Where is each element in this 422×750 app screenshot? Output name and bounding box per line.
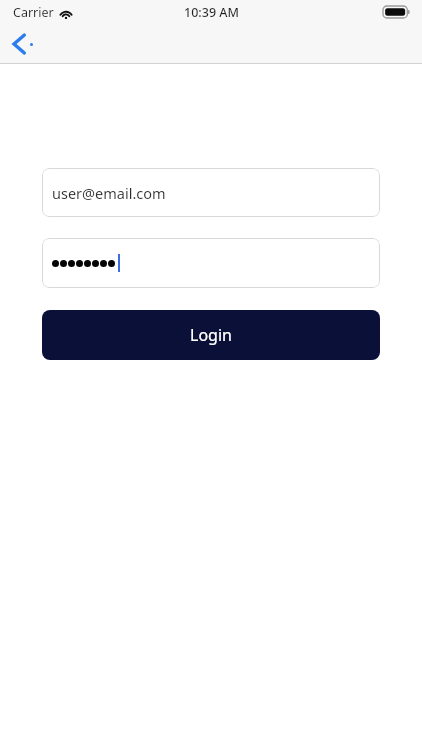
button[interactable]: Login bbox=[42, 310, 380, 360]
staticText: 10:39 AM bbox=[184, 4, 239, 21]
button[interactable]: user@email.com bbox=[42, 168, 380, 217]
button[interactable]: Back bbox=[6, 25, 50, 63]
staticText: Carrier bbox=[13, 4, 54, 21]
button[interactable] bbox=[42, 238, 380, 288]
staticText: Login bbox=[190, 324, 232, 346]
staticText: user@email.com bbox=[52, 183, 166, 203]
